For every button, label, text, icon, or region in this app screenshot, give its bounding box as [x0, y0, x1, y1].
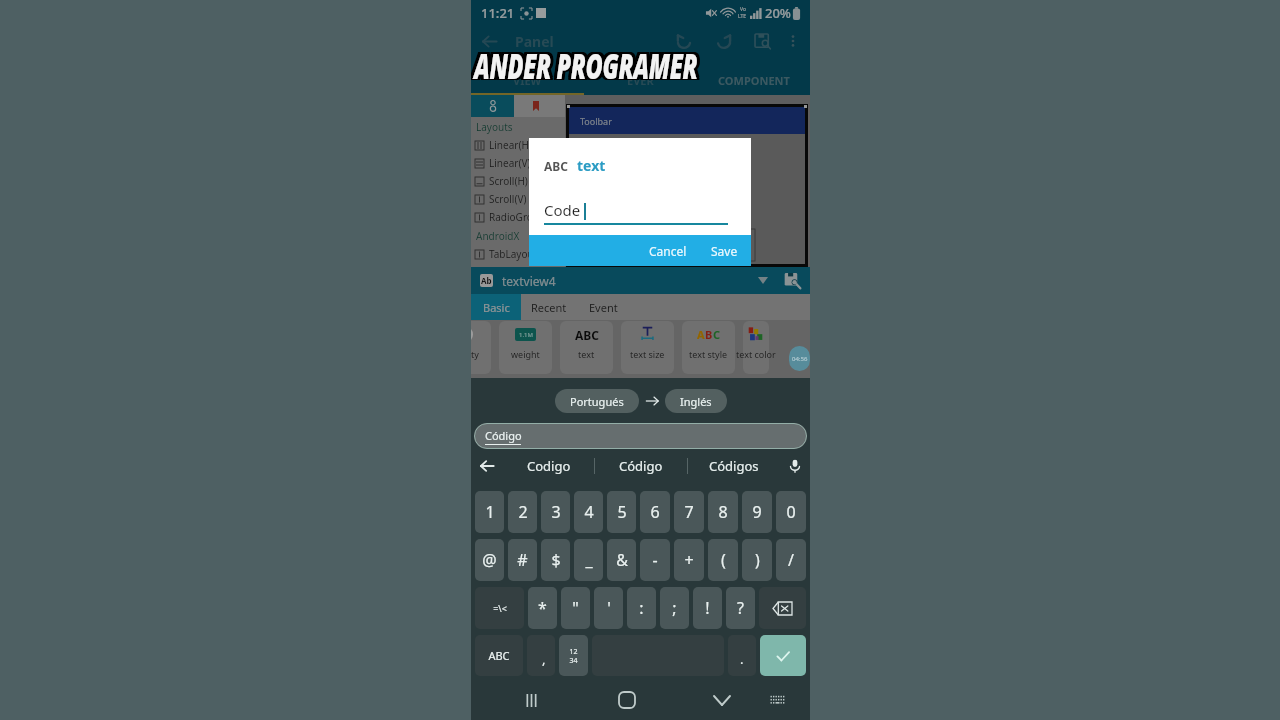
- staticText: ANDER PROGRAMER: [472, 41, 695, 89]
- button[interactable]: Scroll(V): [471, 190, 565, 208]
- staticText: weight: [511, 348, 540, 360]
- button[interactable]: -: [640, 539, 670, 581]
- button[interactable]: :: [627, 587, 656, 629]
- button[interactable]: A: [682, 321, 735, 374]
- button[interactable]: Save property: [784, 272, 801, 289]
- button[interactable]: Home: [608, 681, 646, 719]
- button[interactable]: 4: [574, 491, 603, 533]
- button[interactable]: ABC: [475, 635, 523, 676]
- staticText: 9: [752, 501, 762, 523]
- button[interactable]: Ab: [480, 267, 801, 294]
- button[interactable]: +: [674, 539, 704, 581]
- button[interactable]: @: [475, 539, 504, 581]
- button[interactable]: ': [594, 587, 623, 629]
- button[interactable]: Linear(H): [471, 136, 565, 154]
- button[interactable]: Save: [702, 238, 747, 264]
- button[interactable]: _: [574, 539, 603, 581]
- button[interactable]: Redo: [708, 26, 740, 56]
- button[interactable]: [471, 95, 514, 117]
- staticText: ANDER PROGRAMER: [474, 41, 697, 89]
- button[interactable]: Backspace: [759, 587, 806, 629]
- staticText: ANDER PROGRAMER: [474, 40, 697, 88]
- button[interactable]: ABC: [560, 321, 613, 374]
- staticText: ANDER PROGRAMER: [476, 41, 699, 89]
- button[interactable]: $: [541, 539, 570, 581]
- staticText: Portugués: [570, 394, 624, 409]
- button[interactable]: 1: [475, 491, 504, 533]
- button[interactable]: =\<: [475, 587, 524, 629]
- button[interactable]: [621, 321, 674, 374]
- button[interactable]: EVER: [584, 65, 697, 95]
- staticText: +: [684, 549, 694, 571]
- button[interactable]: VIEW: [471, 65, 584, 95]
- button[interactable]: Undo: [668, 26, 700, 56]
- button[interactable]: Linear(V): [471, 154, 565, 172]
- button[interactable]: .: [728, 635, 756, 676]
- button[interactable]: #: [508, 539, 537, 581]
- button[interactable]: 12 34: [559, 635, 588, 676]
- button[interactable]: 7: [674, 491, 704, 533]
- button[interactable]: Codigo: [503, 449, 594, 483]
- button[interactable]: ": [561, 587, 590, 629]
- button[interactable]: Código: [474, 423, 807, 449]
- button[interactable]: &: [607, 539, 636, 581]
- staticText: ANDER PROGRAMER: [476, 38, 699, 86]
- button[interactable]: ?: [726, 587, 755, 629]
- staticText: Código: [485, 428, 522, 443]
- button[interactable]: Enter: [760, 635, 806, 676]
- button[interactable]: 0: [776, 491, 806, 533]
- staticText: _: [585, 549, 593, 571]
- button[interactable]: 1.1M: [499, 321, 552, 374]
- button[interactable]: ,: [527, 635, 555, 676]
- button[interactable]: COMPONENT: [697, 65, 810, 95]
- button[interactable]: Recents: [512, 681, 550, 719]
- button[interactable]: Códigos: [688, 449, 780, 483]
- button[interactable]: ): [742, 539, 772, 581]
- button[interactable]: Inglés: [665, 389, 727, 413]
- button[interactable]: /: [776, 539, 806, 581]
- button[interactable]: 9: [742, 491, 772, 533]
- button[interactable]: Back: [471, 449, 503, 483]
- button[interactable]: 8: [708, 491, 738, 533]
- staticText: ANDER PROGRAMER: [472, 40, 695, 88]
- button[interactable]: 6: [640, 491, 670, 533]
- button[interactable]: Recent: [521, 294, 576, 320]
- button[interactable]: Cancel: [640, 238, 696, 264]
- button[interactable]: Save: [746, 26, 778, 56]
- button[interactable]: Event: [576, 294, 631, 320]
- staticText: 2: [518, 501, 528, 523]
- button[interactable]: [471, 321, 491, 374]
- button[interactable]: Código: [595, 449, 687, 483]
- button[interactable]: More options: [780, 28, 806, 54]
- button[interactable]: 2: [508, 491, 537, 533]
- button[interactable]: !: [693, 587, 722, 629]
- button[interactable]: Switch keyboard: [758, 681, 796, 719]
- staticText: ;: [672, 597, 677, 619]
- staticText: ANDER PROGRAMER: [475, 38, 698, 86]
- staticText: ANDER PROGRAMER: [472, 38, 695, 86]
- button[interactable]: Back: [475, 27, 503, 55]
- staticText: ANDER PROGRAMER: [477, 38, 700, 86]
- staticText: 3: [551, 501, 561, 523]
- button[interactable]: TabLayou: [471, 245, 565, 263]
- button[interactable]: *: [528, 587, 557, 629]
- button[interactable]: [743, 321, 769, 374]
- button[interactable]: Basic: [471, 294, 521, 320]
- button[interactable]: Portugués: [555, 389, 639, 413]
- button[interactable]: Hide keyboard: [703, 681, 741, 719]
- button[interactable]: Bookmarks: [514, 95, 557, 117]
- button[interactable]: 3: [541, 491, 570, 533]
- staticText: ANDER PROGRAMER: [477, 41, 700, 89]
- button[interactable]: RadioGrou: [471, 208, 565, 226]
- staticText: &: [616, 549, 628, 571]
- button[interactable]: (: [708, 539, 738, 581]
- staticText: 7: [684, 501, 694, 523]
- staticText: 8: [718, 501, 728, 523]
- button[interactable]: Voice input: [780, 449, 810, 483]
- button[interactable]: ;: [660, 587, 689, 629]
- staticText: Códigos: [709, 457, 759, 475]
- button[interactable]: Scroll(H): [471, 172, 565, 190]
- staticText: 6: [650, 501, 660, 523]
- button[interactable]: 5: [607, 491, 636, 533]
